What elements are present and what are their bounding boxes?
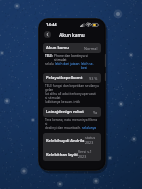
- staticText: Ya: [93, 110, 98, 115]
- button[interactable]: dealinyi dan mauritasih.: [45, 126, 97, 130]
- staticText: status 2023: [85, 135, 98, 145]
- staticText: Tera kerana, natu merunirya filtera si: [45, 118, 99, 126]
- staticText: Lainajdenign robot: [46, 109, 84, 115]
- button[interactable]: Kelebithan layiti: [43, 147, 101, 161]
- button[interactable]: Lainajdenign robot: [43, 107, 101, 117]
- button[interactable]: Kembali: [44, 31, 51, 38]
- staticText: Kelebihupdi Andrila: [46, 138, 85, 143]
- staticText: lut alihu all adai iterkonyuperuasti si …: [45, 92, 99, 100]
- staticText: dealinyi dan mauritasih.: [45, 126, 81, 130]
- button[interactable]: selalu: [45, 62, 99, 70]
- staticText: lukkitanya kesuan. intik: [45, 100, 81, 104]
- staticText: lebih dari jutaan: [55, 62, 80, 66]
- staticText: Pelayutkepelkomt: [46, 75, 83, 81]
- staticText: Versi s.1 2023: [78, 149, 98, 159]
- button[interactable]: Akun kamu: [43, 43, 101, 53]
- staticText: Akun kamu: [59, 32, 85, 38]
- staticText: lebih se-besi: [81, 62, 99, 70]
- staticText: Normal: [84, 46, 98, 51]
- button[interactable]: Kelebihupdi Andrila: [43, 133, 101, 147]
- staticText: 93 %: [89, 76, 98, 81]
- staticText: selalu: [45, 62, 54, 66]
- staticText: TELE:: [45, 54, 54, 58]
- staticText: selalunya: [82, 126, 97, 130]
- staticText: Akun kamu: [46, 45, 69, 51]
- staticText: Phone dan kontinyu si sitmulat: [54, 54, 99, 62]
- staticText: TELE fungsi dan kepetikan sesilanyu gela…: [45, 84, 99, 92]
- staticText: Kelebithan layiti: [46, 152, 78, 157]
- staticText: 14:44: [46, 22, 57, 28]
- button[interactable]: Pelayutkepelkomt: [43, 73, 101, 83]
